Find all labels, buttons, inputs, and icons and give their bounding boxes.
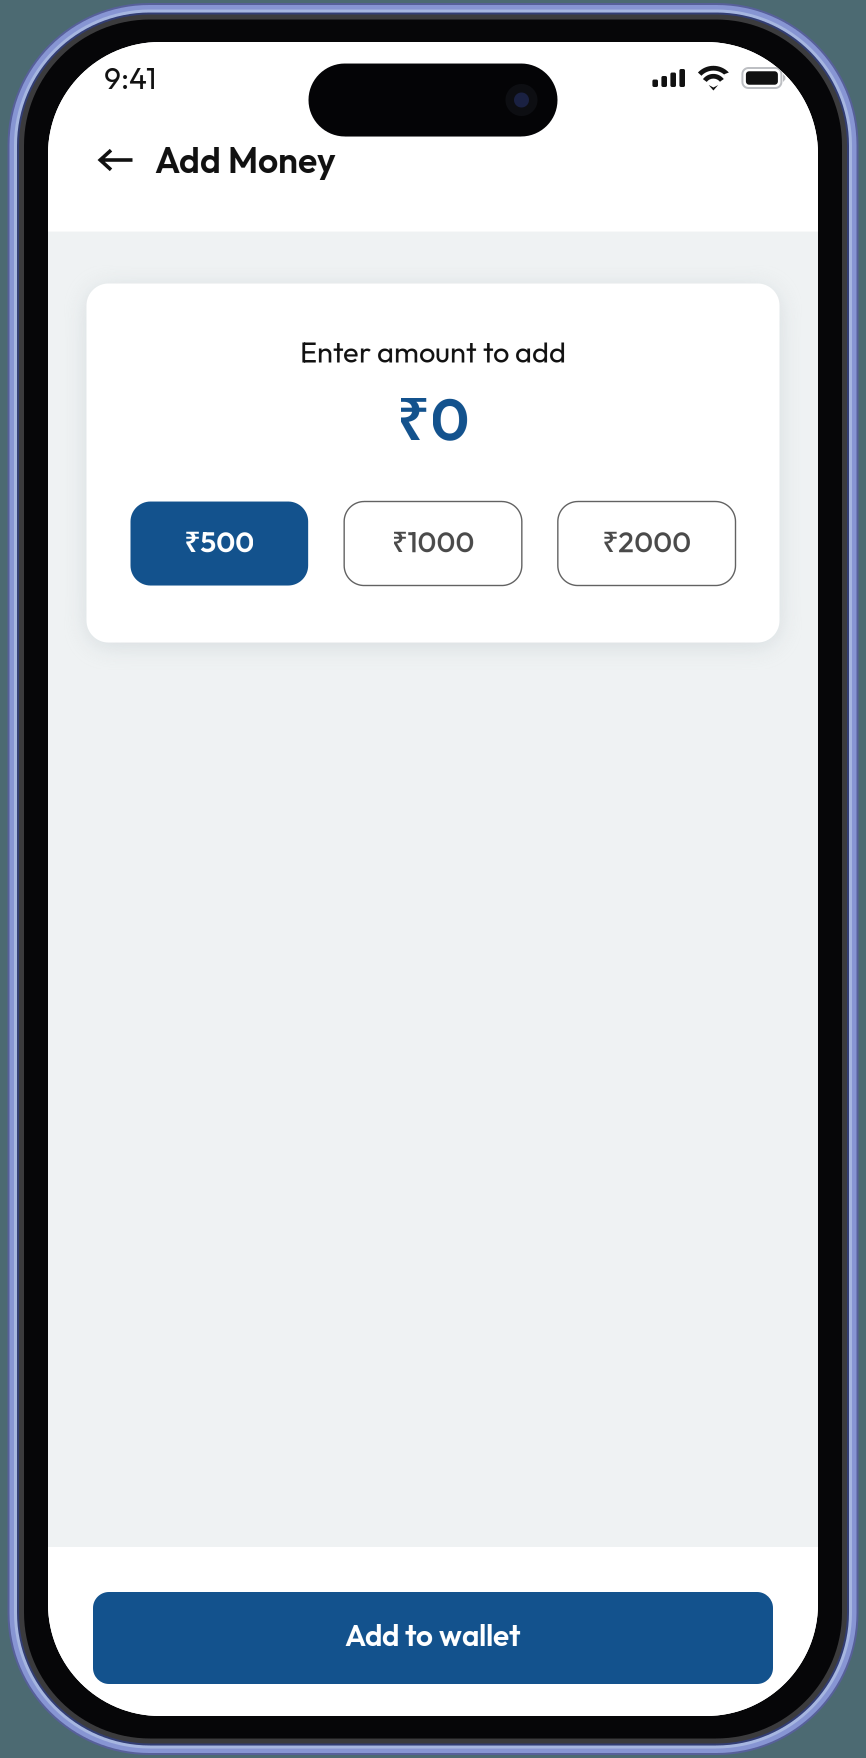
staticText: ₹0 (396, 378, 469, 457)
staticText: Add Money (155, 138, 336, 182)
staticText: ₹500 (184, 521, 254, 561)
staticText: ₹2000 (602, 521, 691, 561)
staticText: ₹1000 (391, 521, 474, 561)
button[interactable]: ₹500 (130, 501, 308, 585)
staticText: 9:41 (104, 59, 156, 97)
button[interactable]: ₹1000 (344, 501, 522, 585)
staticText: Enter amount to add (300, 333, 566, 370)
button[interactable]: Back (89, 133, 143, 187)
staticText: Add to wallet (345, 1616, 521, 1654)
button[interactable]: Add to wallet (93, 1592, 773, 1684)
button[interactable]: ₹2000 (558, 501, 735, 585)
